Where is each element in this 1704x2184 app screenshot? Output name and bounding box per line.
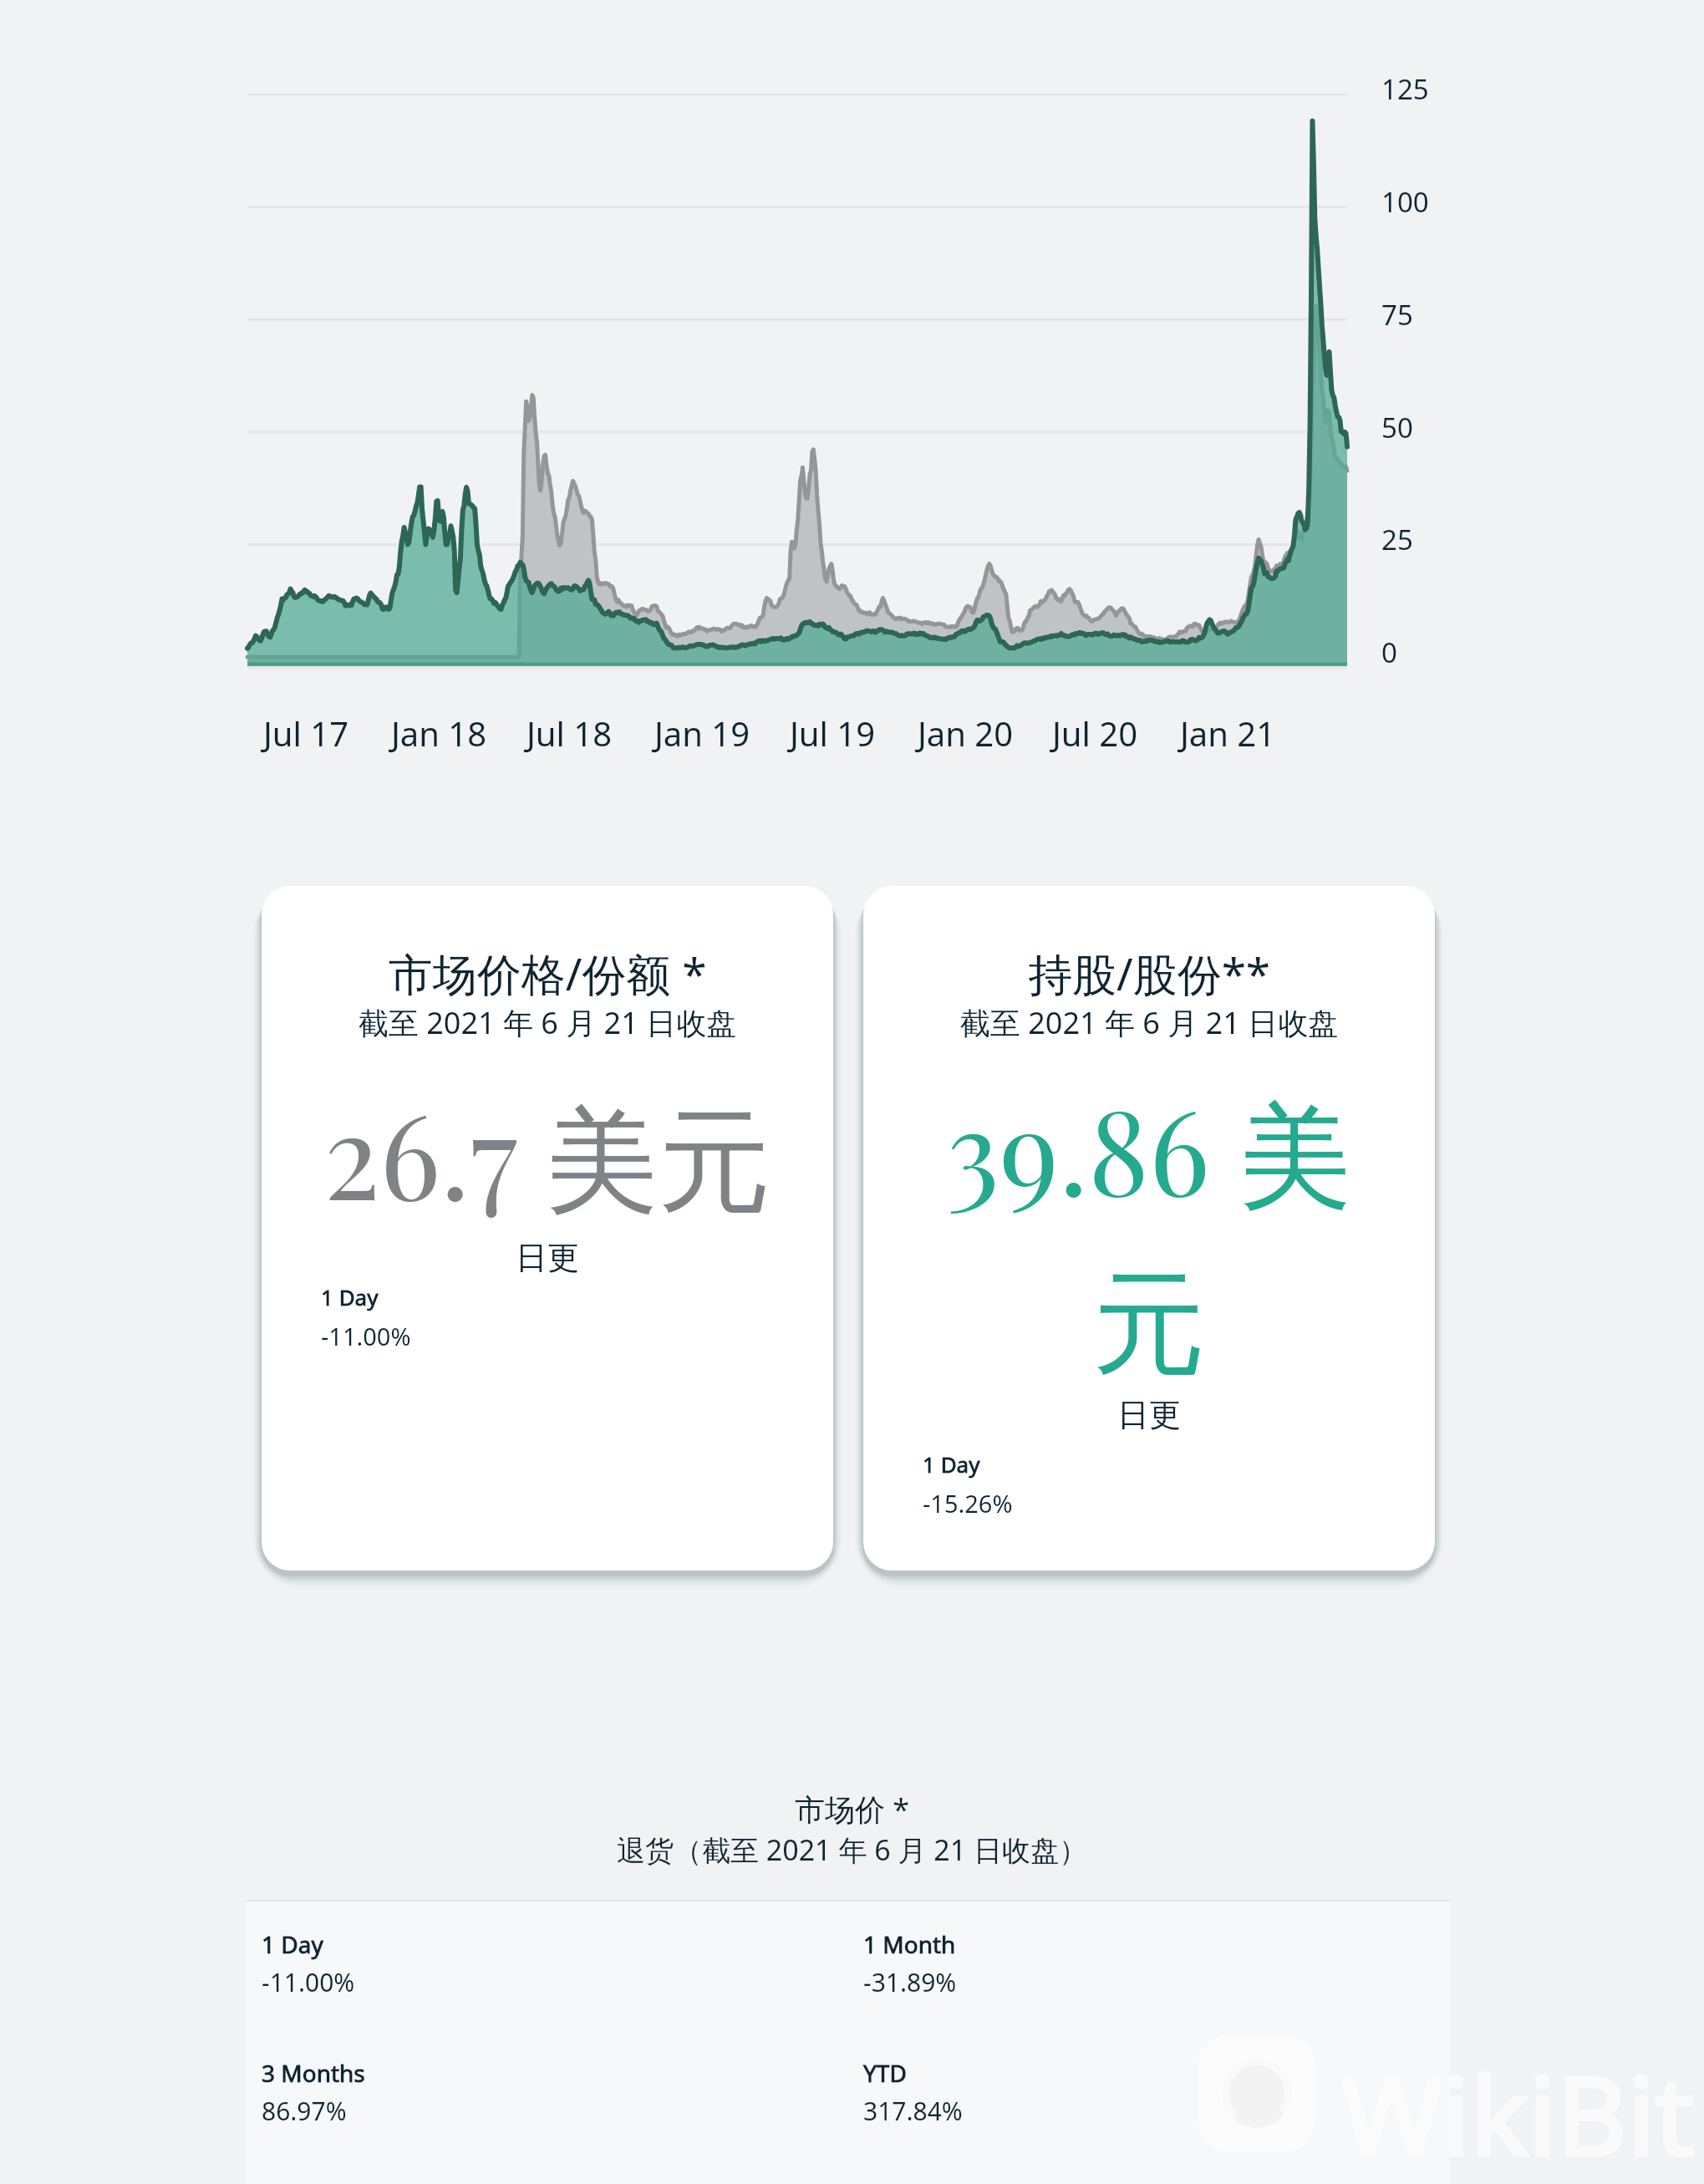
staticText: 退货（截至 2021 年 6 月 21 日收盘） xyxy=(0,1830,1704,1869)
staticText: YTD xyxy=(863,2057,907,2089)
staticText: Jan 18 xyxy=(380,710,497,756)
staticText: 100 xyxy=(1381,183,1429,221)
button[interactable]: 1 Day xyxy=(262,1928,355,1999)
staticText: Jul 18 xyxy=(511,710,628,756)
staticText: Jan 20 xyxy=(907,710,1024,756)
staticText: 持股/股份** xyxy=(863,943,1435,1003)
staticText: 0 xyxy=(1381,634,1397,671)
staticText: Jul 20 xyxy=(1036,710,1153,756)
staticText: Jul 19 xyxy=(774,710,891,756)
staticText: Jan 21 xyxy=(1169,710,1286,756)
staticText: 日更 xyxy=(262,1238,833,1278)
staticText: 1 Day xyxy=(321,1282,379,1311)
staticText: 日更 xyxy=(863,1395,1435,1435)
button[interactable]: YTD xyxy=(863,2057,963,2128)
staticText: 50 xyxy=(1381,409,1413,446)
staticText: 26.7 美元 xyxy=(287,1074,808,1235)
staticText: 截至 2021 年 6 月 21 日收盘 xyxy=(863,1002,1435,1043)
staticText: -31.89% xyxy=(863,1965,957,1999)
staticText: WikiBit xyxy=(1341,2039,1695,2184)
staticText: 市场价 * xyxy=(0,1789,1704,1830)
button[interactable]: 3 Months xyxy=(262,2057,365,2128)
staticText: -11.00% xyxy=(321,1320,411,1352)
staticText: 317.84% xyxy=(863,2094,963,2128)
staticText: -11.00% xyxy=(262,1965,355,1999)
button[interactable]: 市场价格/份额 * xyxy=(262,886,833,1571)
staticText: 25 xyxy=(1381,521,1413,558)
staticText: 1 Day xyxy=(262,1928,323,1960)
staticText: Jul 17 xyxy=(247,710,364,756)
staticText: 75 xyxy=(1381,296,1413,333)
staticText: 截至 2021 年 6 月 21 日收盘 xyxy=(262,1002,833,1043)
staticText: 3 Months xyxy=(262,2057,365,2089)
button[interactable]: 持股/股份** xyxy=(863,886,1435,1571)
button[interactable]: Price history chart xyxy=(247,94,1347,666)
staticText: 125 xyxy=(1381,70,1429,108)
staticText: -15.26% xyxy=(923,1487,1013,1520)
staticText: Jan 19 xyxy=(643,710,760,756)
staticText: 1 Day xyxy=(923,1449,980,1479)
staticText: 86.97% xyxy=(262,2094,347,2128)
staticText: 39.86 美元 xyxy=(943,1070,1356,1397)
staticText: 市场价格/份额 * xyxy=(262,943,833,1003)
staticText: 1 Month xyxy=(863,1928,956,1960)
button[interactable]: 1 Month xyxy=(863,1928,957,1999)
